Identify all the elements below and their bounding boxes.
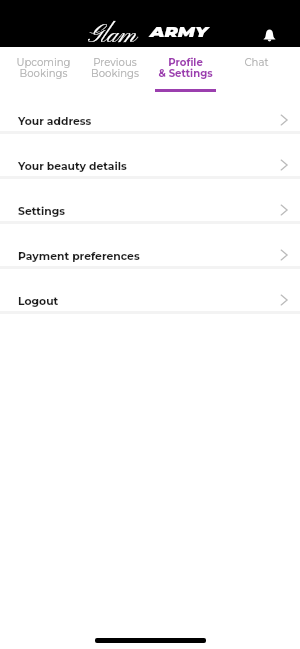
staticText: Your beauty details: [18, 160, 127, 173]
button[interactable]: Notifications: [257, 23, 281, 47]
button[interactable]: Your address: [0, 89, 300, 134]
button[interactable]: Profile & Settings: [150, 47, 221, 89]
staticText: Previous Bookings: [91, 56, 139, 80]
staticText: ARMY: [150, 24, 208, 40]
button[interactable]: Settings: [0, 179, 300, 224]
button[interactable]: Logout: [0, 269, 300, 314]
staticText: Chat: [244, 56, 269, 68]
button[interactable]: Your beauty details: [0, 134, 300, 179]
staticText: Settings: [18, 205, 66, 218]
button[interactable]: Upcoming Bookings: [8, 47, 79, 89]
staticText: Logout: [18, 295, 59, 308]
button[interactable]: Chat: [221, 47, 292, 89]
staticText: Upcoming Bookings: [16, 56, 71, 80]
staticText: Glam: [88, 20, 137, 52]
staticText: Your address: [18, 115, 92, 128]
button[interactable]: Previous Bookings: [79, 47, 150, 89]
staticText: Payment preferences: [18, 250, 140, 263]
button[interactable]: Payment preferences: [0, 224, 300, 269]
staticText: Profile & Settings: [158, 56, 213, 80]
